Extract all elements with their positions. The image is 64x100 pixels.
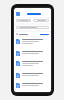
other: Document [16, 83, 20, 88]
button[interactable]: Document [14, 59, 51, 71]
other: Document [16, 51, 20, 56]
button[interactable] [33, 19, 49, 22]
button[interactable] [16, 26, 49, 29]
button[interactable]: Document [14, 91, 51, 92]
other: Document [16, 73, 20, 78]
button[interactable]: Document [14, 49, 51, 59]
button[interactable] [16, 19, 31, 22]
other: Document [16, 61, 20, 66]
button[interactable]: Document [14, 81, 51, 91]
button[interactable]: Sort [40, 34, 49, 35]
button[interactable]: Document [14, 37, 51, 49]
button[interactable]: Document [14, 71, 51, 81]
other: Document [16, 39, 20, 44]
button[interactable]: App menu [16, 12, 20, 16]
